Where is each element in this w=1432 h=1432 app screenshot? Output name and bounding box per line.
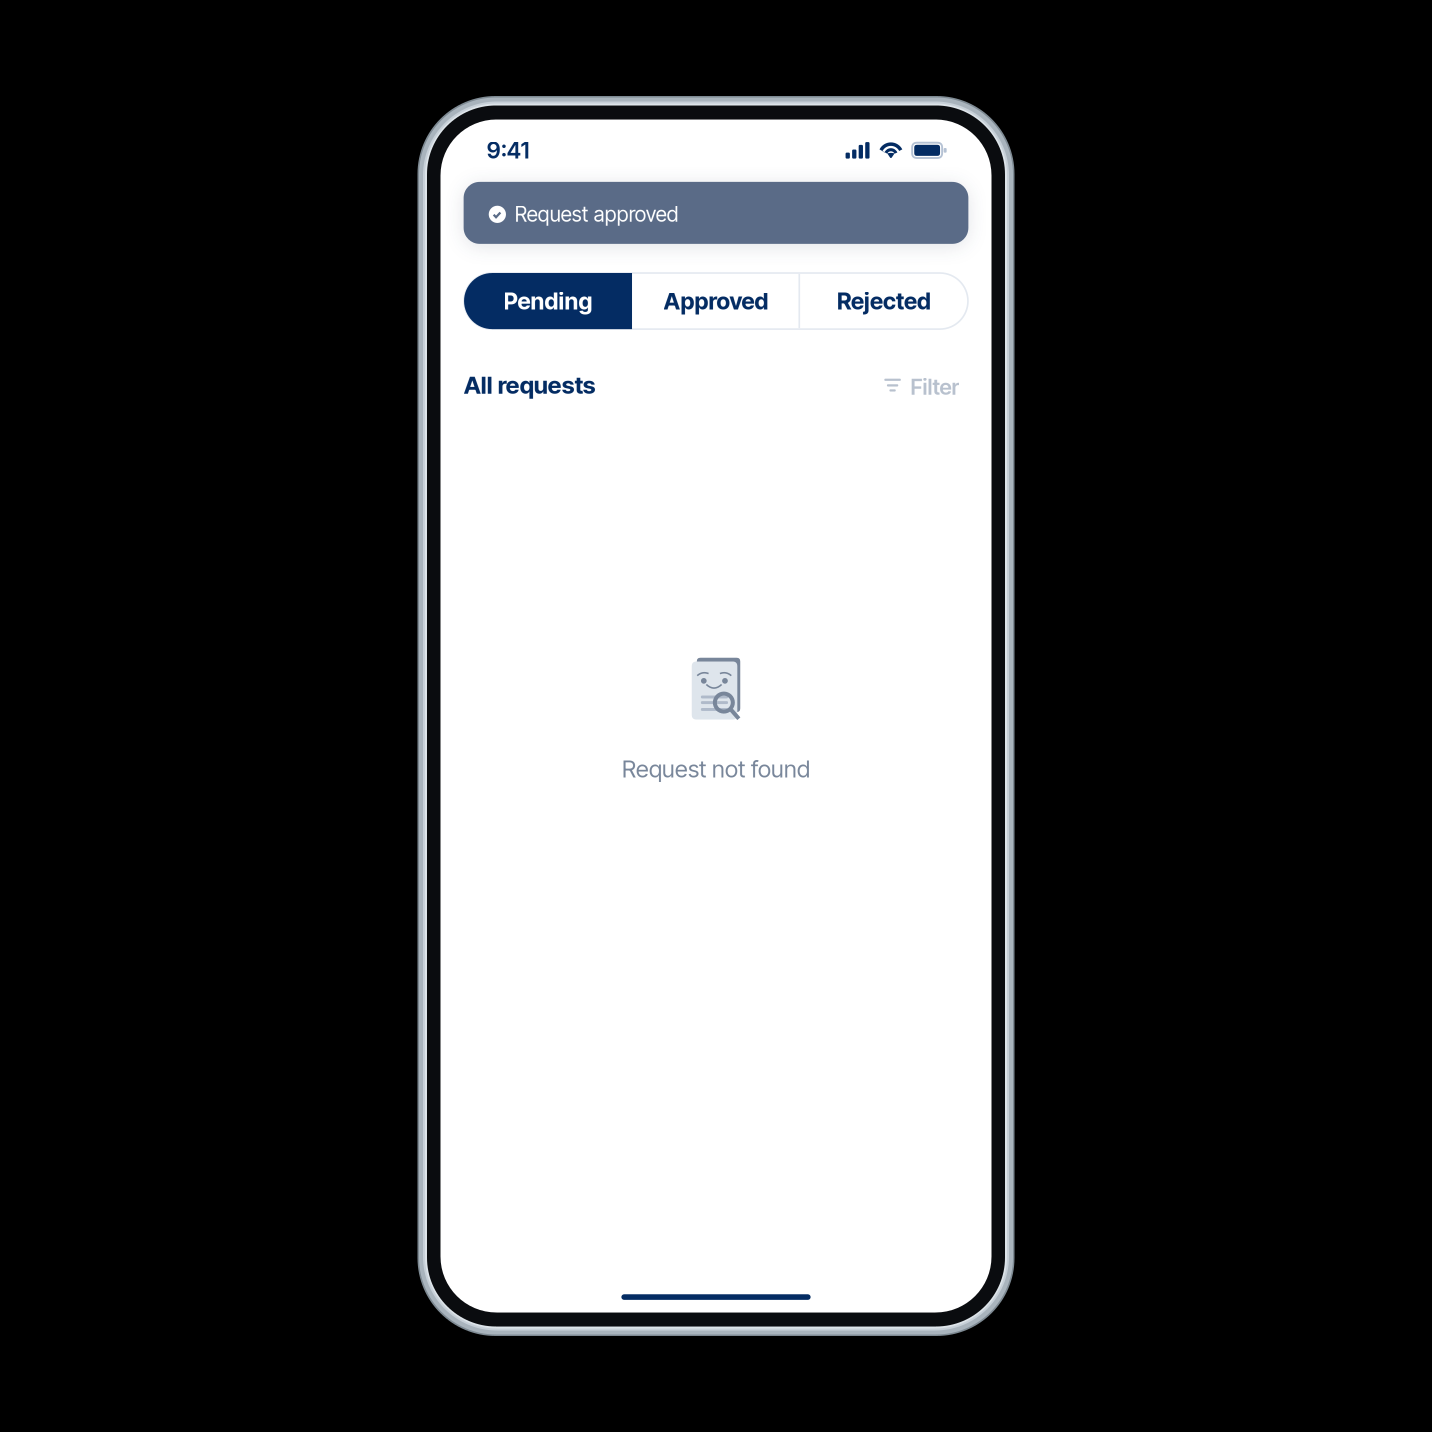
staticText: Pending bbox=[503, 287, 592, 315]
staticText: 9:41 bbox=[487, 137, 530, 164]
button[interactable]: Filter bbox=[884, 370, 968, 400]
staticText: All requests bbox=[464, 370, 596, 399]
staticText: Rejected bbox=[837, 287, 931, 315]
button[interactable]: Approved bbox=[632, 273, 800, 329]
staticText: Approved bbox=[663, 287, 768, 315]
staticText: Request approved bbox=[515, 202, 679, 227]
staticText: Request not found bbox=[622, 755, 810, 783]
staticText: Filter bbox=[910, 373, 959, 400]
button[interactable]: Pending bbox=[464, 273, 632, 329]
button[interactable]: Rejected bbox=[800, 273, 968, 329]
